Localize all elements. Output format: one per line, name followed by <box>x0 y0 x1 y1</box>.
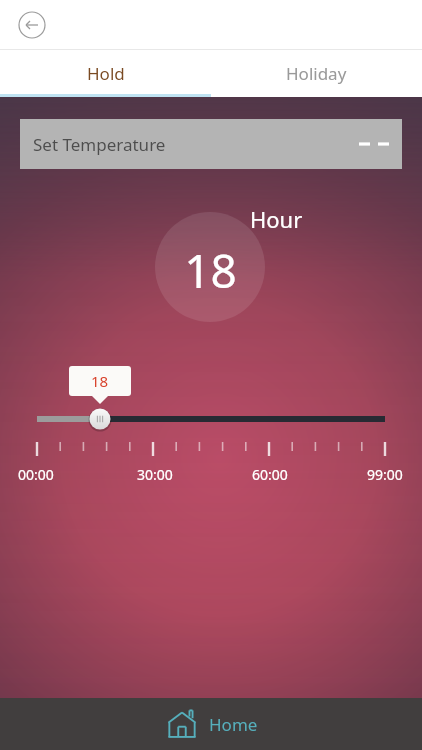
staticText: 60:00 <box>252 465 288 484</box>
staticText: 00:00 <box>18 465 54 484</box>
staticText: Set Temperature <box>33 133 166 156</box>
button[interactable]: Home <box>149 701 274 747</box>
staticText: Hold <box>87 62 125 85</box>
staticText: Hour <box>250 204 303 234</box>
staticText: 30:00 <box>137 465 173 484</box>
staticText: 18 <box>184 239 237 302</box>
staticText: 99:00 <box>367 465 403 484</box>
staticText: Home <box>209 713 258 736</box>
button[interactable]: Holiday <box>211 50 422 97</box>
button[interactable]: Set Temperature <box>20 119 402 169</box>
button[interactable]: Hold <box>0 50 211 97</box>
staticText: Holiday <box>286 62 347 85</box>
staticText: 18 <box>91 371 109 391</box>
button[interactable]: Back <box>12 5 52 45</box>
